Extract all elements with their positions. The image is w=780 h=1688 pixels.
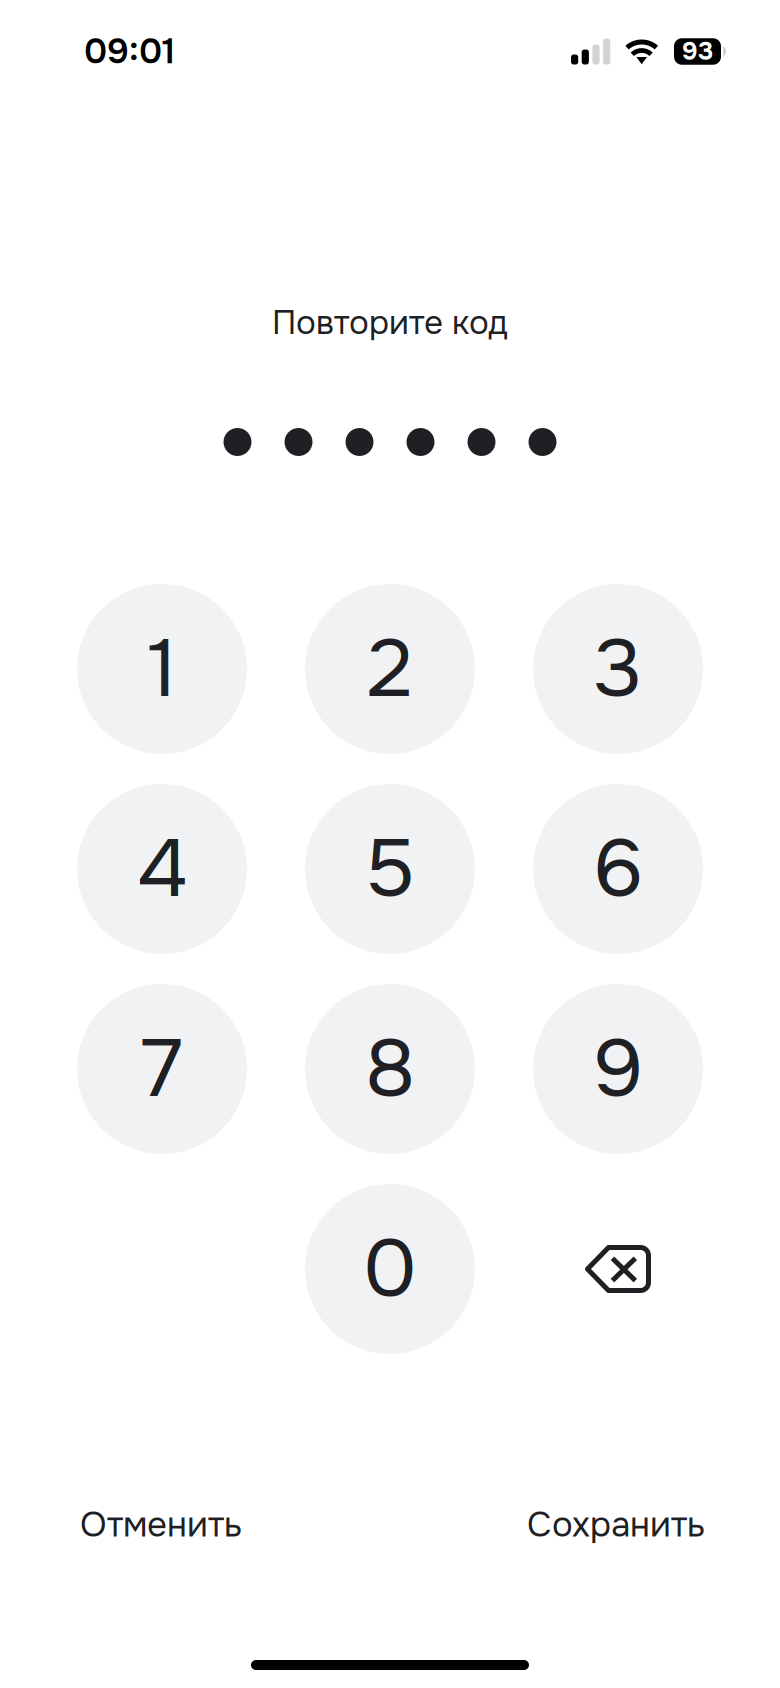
staticText: 4 <box>136 817 187 921</box>
button[interactable]: 7 <box>77 984 247 1154</box>
staticText: 3 <box>593 617 642 721</box>
button[interactable]: 9 <box>533 984 703 1154</box>
button[interactable]: 0 <box>305 1184 475 1354</box>
button[interactable]: 2 <box>305 584 475 754</box>
staticText: 7 <box>141 1017 182 1121</box>
staticText: 93 <box>682 36 713 67</box>
staticText: 8 <box>365 1017 415 1121</box>
button[interactable]: 6 <box>533 784 703 954</box>
staticText: 0 <box>363 1217 417 1321</box>
staticText: 6 <box>593 817 643 921</box>
staticText: 1 <box>147 617 176 721</box>
staticText: Сохранить <box>527 1503 705 1547</box>
button[interactable]: 4 <box>77 784 247 954</box>
staticText: Повторите код <box>272 302 508 344</box>
button[interactable]: 1 <box>77 584 247 754</box>
button[interactable]: 5 <box>305 784 475 954</box>
button[interactable]: Сохранить <box>527 1503 705 1547</box>
button[interactable]: 8 <box>305 984 475 1154</box>
staticText: Отменить <box>80 1503 242 1547</box>
staticText: 09:01 <box>84 29 175 74</box>
staticText: 9 <box>593 1017 643 1121</box>
staticText: 5 <box>365 817 415 921</box>
button[interactable]: 3 <box>533 584 703 754</box>
button[interactable]: Отменить <box>80 1503 242 1547</box>
staticText: 2 <box>367 617 413 721</box>
button[interactable]: Delete <box>533 1184 703 1354</box>
